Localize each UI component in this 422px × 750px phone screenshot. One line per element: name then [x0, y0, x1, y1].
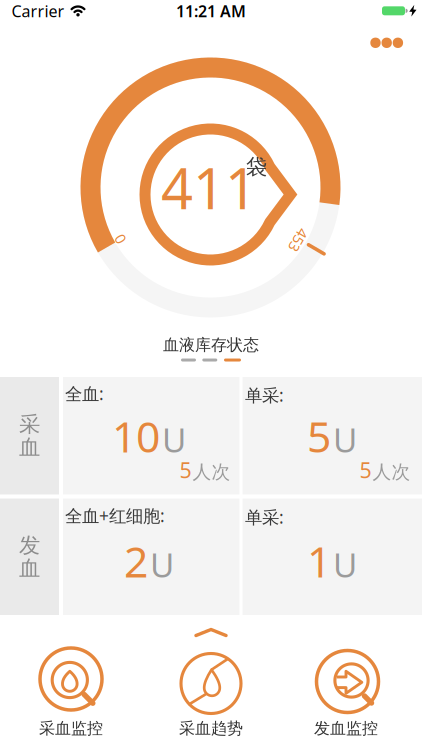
- staticText: Carrier: [11, 0, 64, 22]
- button[interactable]: More: [365, 28, 409, 58]
- staticText: 发血监控: [314, 719, 378, 738]
- staticText: 采血监控: [39, 719, 103, 738]
- staticText: 5: [179, 456, 191, 484]
- staticText: 血: [19, 555, 40, 582]
- staticText: 0: [116, 230, 124, 249]
- staticText: U: [150, 542, 174, 587]
- button[interactable]: 采血监控: [6, 646, 136, 738]
- button[interactable]: 采血趋势: [146, 646, 276, 738]
- staticText: 全血+红细胞:: [65, 504, 165, 527]
- staticText: 采: [19, 411, 40, 438]
- staticText: 2: [124, 533, 148, 589]
- staticText: 袋: [246, 154, 267, 180]
- staticText: 11:21 AM: [176, 0, 246, 22]
- staticText: U: [333, 417, 357, 462]
- button[interactable]: 发血监控: [281, 646, 411, 738]
- staticText: 人次: [372, 461, 410, 483]
- staticText: 人次: [192, 461, 230, 483]
- staticText: 5: [359, 456, 371, 484]
- staticText: 血: [19, 434, 40, 461]
- staticText: 采血趋势: [179, 719, 243, 738]
- staticText: 单采:: [245, 505, 284, 528]
- staticText: 发: [19, 532, 40, 559]
- staticText: 1: [307, 533, 331, 589]
- staticText: 411: [161, 150, 257, 225]
- staticText: U: [333, 542, 357, 587]
- staticText: 453: [286, 230, 310, 250]
- staticText: 全血:: [65, 382, 104, 405]
- staticText: 血液库存状态: [163, 335, 259, 355]
- staticText: U: [162, 417, 186, 462]
- staticText: 单采:: [245, 383, 284, 406]
- staticText: 5: [307, 408, 331, 464]
- staticText: 10: [112, 408, 160, 464]
